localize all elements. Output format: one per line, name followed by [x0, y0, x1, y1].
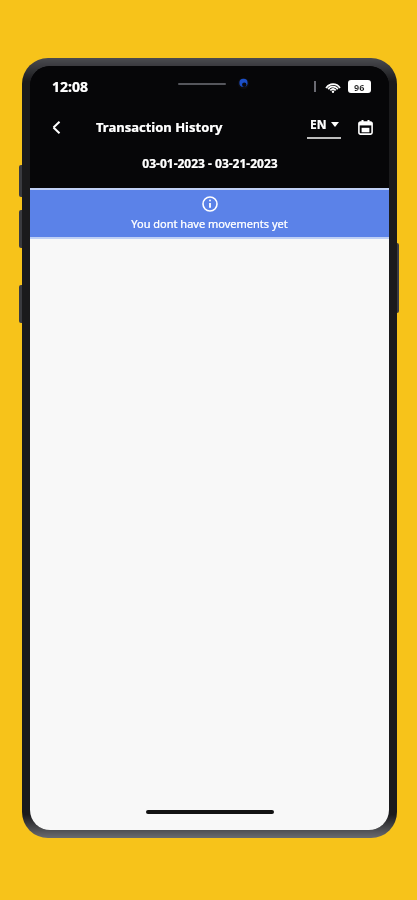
staticText: 03-01-2023 - 03-21-2023: [142, 155, 278, 171]
staticText: Transaction History: [96, 118, 223, 136]
staticText: You dont have movements yet: [131, 216, 288, 231]
staticText: 12:08: [52, 77, 88, 96]
button[interactable]: Select date range: [347, 109, 383, 145]
button[interactable]: EN: [307, 116, 341, 139]
staticText: 96: [354, 81, 365, 93]
staticText: EN: [310, 116, 327, 132]
button[interactable]: Back: [36, 107, 76, 147]
button[interactable]: You dont have movements yet: [30, 190, 389, 237]
